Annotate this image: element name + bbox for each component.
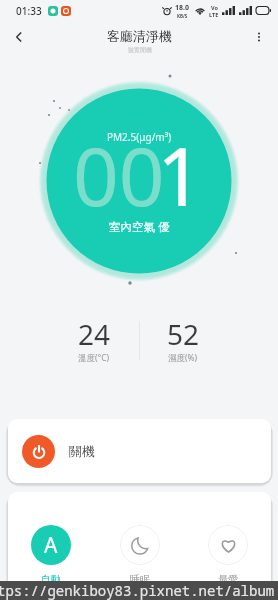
staticText: PM2.5(μg/m³)	[107, 130, 172, 144]
staticText: 最愛	[218, 573, 238, 586]
staticText: 濕度(%)	[168, 352, 198, 364]
staticText: 室內空氣 優	[109, 219, 170, 235]
staticText: tps://genkiboy83.pixnet.net/album	[0, 581, 275, 600]
staticText: 52	[167, 315, 200, 353]
button[interactable]: 睡眠	[109, 525, 171, 586]
staticText: 睡眠	[130, 573, 150, 586]
button[interactable]: More options	[248, 26, 270, 48]
staticText: 客廳清淨機	[107, 28, 172, 44]
staticText: 裝置閒機	[128, 46, 152, 54]
button[interactable]: Back	[8, 26, 30, 48]
button[interactable]: 最愛	[197, 525, 259, 586]
staticText: A	[44, 531, 58, 560]
button[interactable]: 關機	[8, 419, 271, 483]
staticText: 24	[78, 315, 111, 353]
staticText: 溫度(°C)	[78, 352, 110, 364]
staticText: 自動	[41, 573, 61, 586]
staticText: 18.0	[175, 3, 189, 13]
staticText: 1	[157, 120, 203, 229]
button[interactable]: A	[20, 525, 82, 586]
staticText: 00	[73, 120, 165, 229]
staticText: Vo	[211, 4, 218, 11]
staticText: LTE	[209, 11, 219, 18]
staticText: 01:33	[16, 4, 42, 18]
staticText: KB/S	[177, 13, 188, 19]
staticText: 關機	[69, 443, 95, 459]
